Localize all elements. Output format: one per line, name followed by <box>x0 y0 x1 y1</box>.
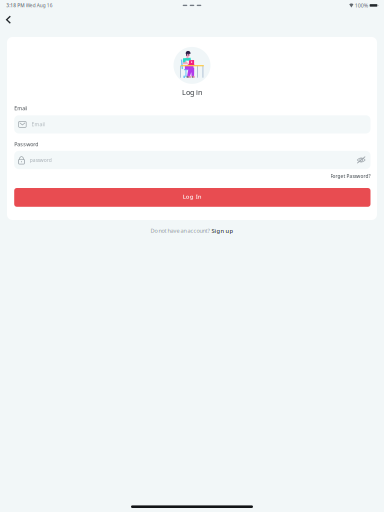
staticText: Email <box>31 121 44 128</box>
staticText: Do not have an account? <box>150 227 209 234</box>
button[interactable]: Email <box>14 115 370 133</box>
staticText: Log In <box>183 192 202 200</box>
staticText: 100% <box>355 2 368 9</box>
button[interactable]: Log In <box>14 188 370 207</box>
staticText: 3:18 PM <box>6 2 24 9</box>
staticText: Wed Aug 16 <box>26 2 53 9</box>
staticText: password <box>30 157 52 163</box>
staticText: Forget Password? <box>330 173 370 179</box>
staticText: Email <box>14 105 27 112</box>
button[interactable]: Multitasking Controls <box>179 1 205 9</box>
button[interactable]: Back <box>0 12 17 28</box>
staticText: Log in <box>182 87 202 97</box>
button[interactable]: Forget Password? <box>14 173 370 179</box>
staticText: Password <box>14 140 38 148</box>
staticText: Sign up <box>212 227 234 235</box>
button[interactable]: password <box>14 151 370 169</box>
button[interactable]: Sign up <box>209 227 234 235</box>
